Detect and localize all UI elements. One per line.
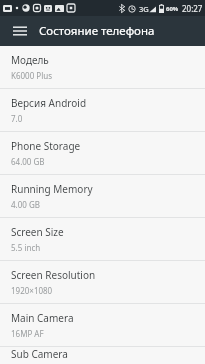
staticText: 4.00 GB	[11, 199, 40, 210]
button[interactable]: Screen Size	[0, 218, 205, 260]
staticText: Sub Camera	[11, 347, 68, 361]
button[interactable]: Open navigation menu	[7, 18, 33, 44]
staticText: Модель	[11, 53, 49, 67]
button[interactable]: Версия Android	[0, 89, 205, 131]
staticText: Screen Resolution	[11, 268, 96, 282]
staticText: 5.5 inch	[11, 242, 41, 253]
staticText: Состояние телефона	[39, 23, 155, 39]
button[interactable]: Sub Camera	[0, 347, 205, 364]
staticText: 7.0	[11, 113, 23, 124]
staticText: Screen Size	[11, 225, 64, 239]
button[interactable]: Main Camera	[0, 304, 205, 346]
staticText: 60%	[166, 5, 179, 13]
staticText: 16MP AF	[11, 328, 44, 339]
button[interactable]: Screen Resolution	[0, 261, 205, 303]
staticText: Phone Storage	[11, 139, 81, 153]
staticText: 20:27	[182, 3, 203, 14]
staticText: Версия Android	[11, 96, 87, 110]
button[interactable]: Running Memory	[0, 175, 205, 217]
staticText: 64.00 GB	[11, 156, 45, 167]
staticText: Main Camera	[11, 311, 74, 325]
staticText: 1920×1080	[11, 285, 53, 296]
button[interactable]: Модель	[0, 46, 205, 88]
button[interactable]: Phone Storage	[0, 132, 205, 174]
staticText: 3G	[139, 4, 149, 14]
staticText: K6000 Plus	[11, 70, 53, 81]
staticText: Running Memory	[11, 182, 93, 196]
